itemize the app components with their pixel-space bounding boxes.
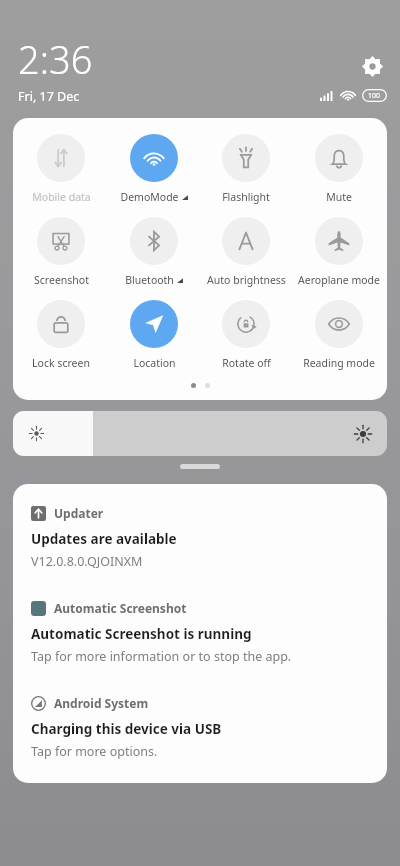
staticText: Aeroplane mode [298, 273, 380, 287]
staticText: Lock screen [32, 356, 90, 370]
button[interactable]: Flashlight [201, 134, 291, 204]
button[interactable]: Mute [294, 134, 384, 204]
button[interactable]: Mobile data [16, 134, 106, 204]
staticText: Tap for more options. [31, 743, 158, 760]
button[interactable]: DemoMode [109, 134, 199, 204]
button[interactable]: Rotate off [201, 300, 291, 370]
staticText: Mute [326, 190, 352, 204]
staticText: Updater [54, 505, 104, 521]
button[interactable]: Settings [354, 48, 390, 84]
staticText: Charging this device via USB [31, 720, 222, 738]
staticText: 100 [368, 91, 381, 101]
staticText: DemoMode [120, 190, 179, 204]
staticText: Screenshot [34, 273, 89, 287]
button[interactable]: Aeroplane mode [294, 217, 384, 287]
button[interactable]: Bluetooth [109, 217, 199, 287]
staticText: Rotate off [222, 356, 271, 370]
button[interactable]: Android System [13, 681, 387, 776]
staticText: V12.0.8.0.QJOINXM [31, 553, 143, 570]
button[interactable]: Automatic Screenshot [13, 586, 387, 681]
staticText: Bluetooth [125, 273, 174, 287]
staticText: 2:36 [18, 33, 93, 85]
button[interactable]: Reading mode [294, 300, 384, 370]
button[interactable]: Auto brightness [201, 217, 291, 287]
staticText: Automatic Screenshot is running [31, 625, 252, 643]
staticText: Tap for more information or to stop the … [31, 648, 292, 665]
staticText: Flashlight [222, 190, 270, 204]
staticText: Auto brightness [207, 273, 286, 287]
staticText: Reading mode [303, 356, 375, 370]
staticText: Android System [54, 695, 149, 711]
button[interactable]: Screenshot [16, 217, 106, 287]
button[interactable]: Updater [13, 491, 387, 586]
staticText: Mobile data [32, 190, 91, 204]
staticText: Automatic Screenshot [54, 600, 187, 616]
button[interactable]: Lock screen [16, 300, 106, 370]
staticText: Location [133, 356, 176, 370]
staticText: Fri, 17 Dec [18, 88, 80, 105]
button[interactable]: Location [109, 300, 199, 370]
staticText: Updates are available [31, 530, 177, 548]
button[interactable]: Brightness [13, 411, 387, 456]
